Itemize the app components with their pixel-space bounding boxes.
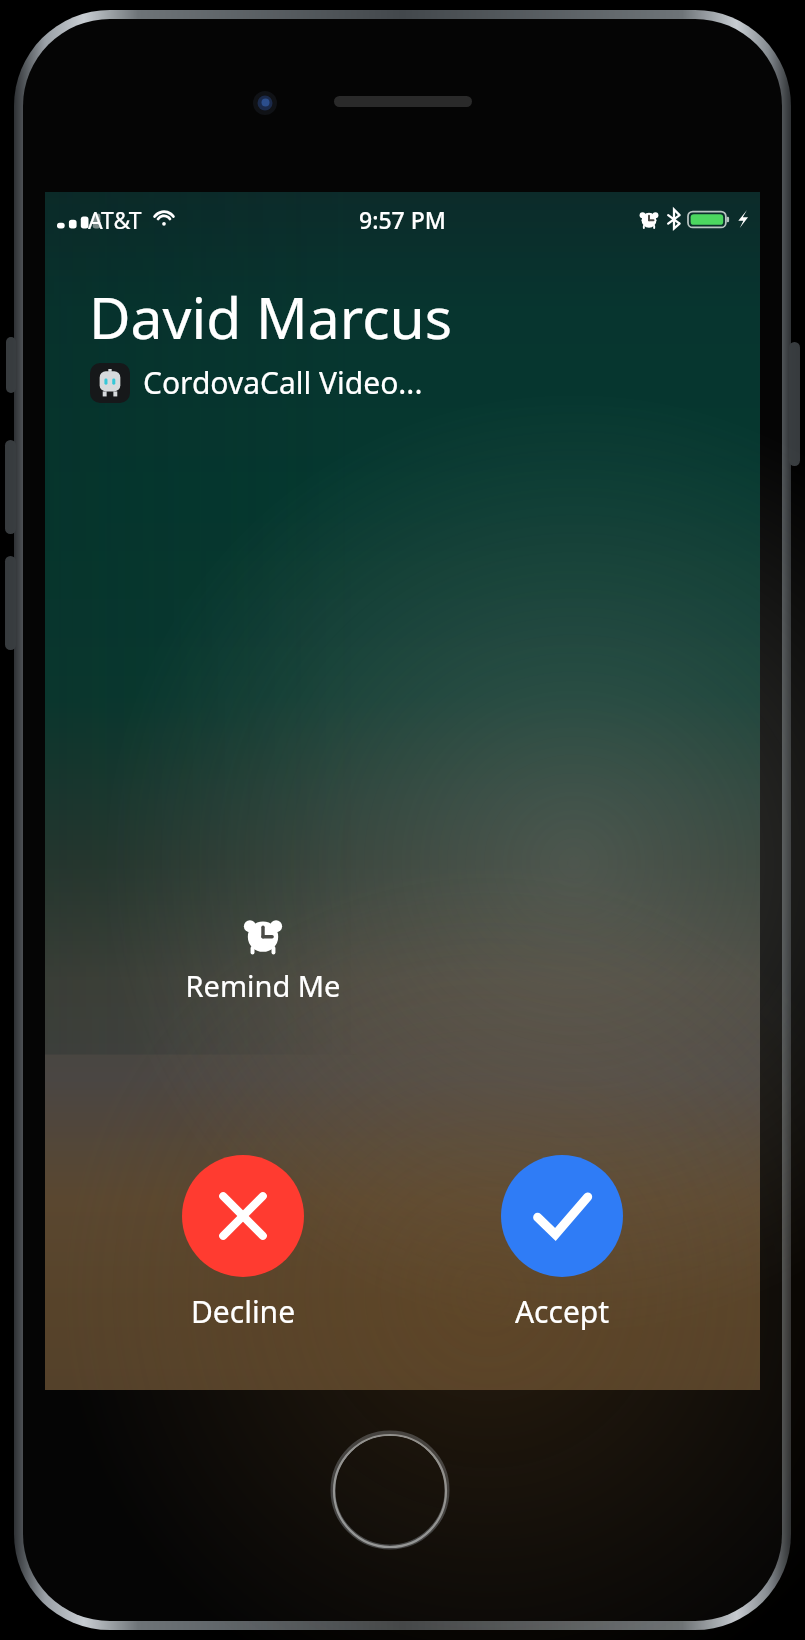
staticText: David Marcus xyxy=(89,278,453,356)
staticText: Remind Me xyxy=(153,966,373,1005)
button[interactable]: Remind Me xyxy=(153,910,373,1005)
button[interactable]: Decline xyxy=(123,1155,363,1332)
other: Decline xyxy=(182,1155,304,1277)
staticText: Decline xyxy=(123,1291,363,1332)
staticText: 9:57 PM xyxy=(359,204,446,235)
other: Accept xyxy=(501,1155,623,1277)
other: Remind Me xyxy=(240,910,286,956)
staticText: Accept xyxy=(442,1291,682,1332)
staticText: AT&T xyxy=(88,204,142,235)
staticText: CordovaCall Video... xyxy=(143,362,423,403)
button[interactable]: Accept xyxy=(442,1155,682,1332)
